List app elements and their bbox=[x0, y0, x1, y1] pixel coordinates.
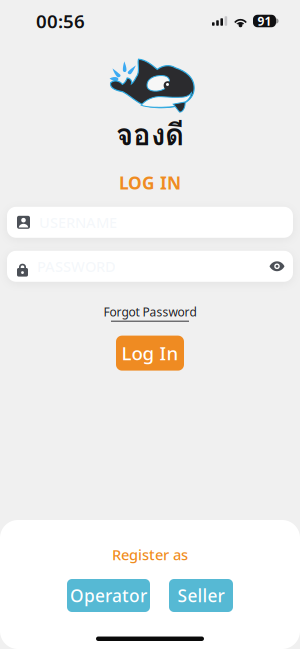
staticText: Forgot Password bbox=[103, 304, 196, 320]
button[interactable]: Log In bbox=[116, 336, 184, 371]
staticText: 00:56 bbox=[36, 9, 85, 33]
staticText: PASSWORD bbox=[37, 256, 116, 276]
button[interactable]: Seller bbox=[169, 579, 233, 612]
button[interactable]: Operator bbox=[67, 579, 150, 612]
staticText: Seller bbox=[177, 584, 224, 607]
button[interactable]: Forgot Password bbox=[95, 299, 204, 327]
staticText: Operator bbox=[70, 584, 147, 607]
staticText: LOG IN bbox=[119, 171, 181, 194]
staticText: จองดี bbox=[116, 112, 184, 158]
staticText: 91 bbox=[257, 13, 271, 29]
staticText: USERNAME bbox=[39, 212, 117, 232]
button[interactable]: Show password bbox=[265, 254, 289, 278]
staticText: Log In bbox=[121, 341, 178, 365]
staticText: Register as bbox=[112, 545, 188, 564]
